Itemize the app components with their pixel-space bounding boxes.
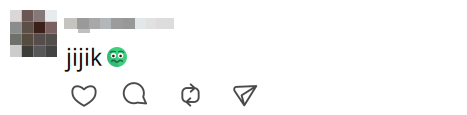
button[interactable]: Repost [181,83,200,107]
button[interactable]: Profile photo [10,10,57,57]
button[interactable]: Username [64,18,174,33]
button[interactable]: Reply [123,84,147,107]
button[interactable]: Share [233,85,257,106]
staticText: jijik [66,42,102,72]
button[interactable]: Like [72,85,96,106]
